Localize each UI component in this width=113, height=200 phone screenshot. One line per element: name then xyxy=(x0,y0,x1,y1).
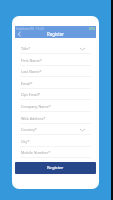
button[interactable]: City* xyxy=(15,135,96,147)
staticText: City* xyxy=(21,139,30,144)
button[interactable]: Last Name* xyxy=(15,65,96,77)
button[interactable]: Ops Email* xyxy=(15,88,96,100)
button[interactable]: Title* xyxy=(15,42,96,54)
staticText: Company Name* xyxy=(21,104,51,109)
button[interactable]: Company Name* xyxy=(15,100,96,112)
button[interactable]: Email* xyxy=(15,77,96,89)
button[interactable]: Register xyxy=(15,162,96,174)
staticText: Web Address* xyxy=(21,116,46,121)
staticText: Mobile Number* xyxy=(21,150,51,155)
staticText: Ops Email* xyxy=(21,92,41,97)
staticText: Register xyxy=(47,31,65,37)
staticText: Email* xyxy=(21,81,33,86)
button[interactable]: Back xyxy=(15,30,23,38)
staticText: Title* xyxy=(21,46,31,51)
button[interactable]: Web Address* xyxy=(15,112,96,124)
button[interactable]: Country* xyxy=(15,123,96,135)
staticText: First Name* xyxy=(21,58,42,63)
staticText: Last Name* xyxy=(21,69,42,74)
staticText: 83% xyxy=(89,27,95,31)
staticText: Country* xyxy=(21,127,37,132)
staticText: Vodafone IN xyxy=(16,27,34,31)
button[interactable]: First Name* xyxy=(15,54,96,66)
staticText: 11:23 xyxy=(36,27,44,31)
button[interactable]: Mobile Number* xyxy=(15,146,96,158)
staticText: Register xyxy=(47,165,64,171)
